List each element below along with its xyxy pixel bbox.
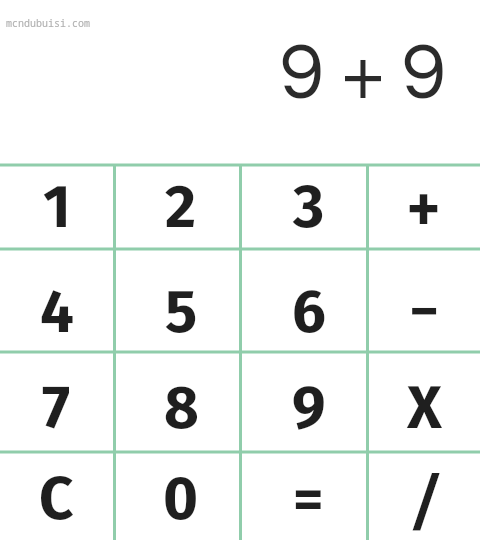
button[interactable]: C	[0, 452, 115, 540]
staticText: mcndubuisi.com	[6, 16, 90, 30]
staticText: +	[408, 175, 440, 242]
button[interactable]: /	[368, 452, 480, 540]
staticText: /	[413, 457, 441, 540]
staticText: 5	[165, 276, 198, 348]
button[interactable]: 7	[0, 352, 115, 452]
staticText: 7	[42, 372, 71, 444]
button[interactable]: 5	[115, 249, 241, 352]
staticText: 9	[292, 372, 326, 444]
staticText: 2	[165, 171, 197, 243]
staticText: 6	[292, 276, 326, 348]
staticText: =	[292, 465, 325, 532]
button[interactable]: 1	[0, 165, 115, 249]
staticText: X	[407, 372, 442, 444]
staticText: 0	[163, 463, 199, 535]
staticText: 3	[293, 171, 325, 243]
staticText: 8	[164, 372, 199, 444]
button[interactable]: 0	[115, 452, 241, 540]
button[interactable]: 2	[115, 165, 241, 249]
button[interactable]: =	[241, 452, 368, 540]
staticText: −	[408, 278, 440, 345]
staticText: C	[39, 463, 74, 535]
button[interactable]: 3	[241, 165, 368, 249]
button[interactable]: +	[368, 165, 480, 249]
button[interactable]: 6	[241, 249, 368, 352]
staticText: 4	[40, 276, 74, 348]
staticText: 1	[43, 171, 71, 243]
button[interactable]: 8	[115, 352, 241, 452]
button[interactable]: 9	[241, 352, 368, 452]
button[interactable]: 4	[0, 249, 115, 352]
staticText: 9 + 9	[280, 32, 447, 114]
button[interactable]: −	[368, 249, 480, 352]
button[interactable]: X	[368, 352, 480, 452]
